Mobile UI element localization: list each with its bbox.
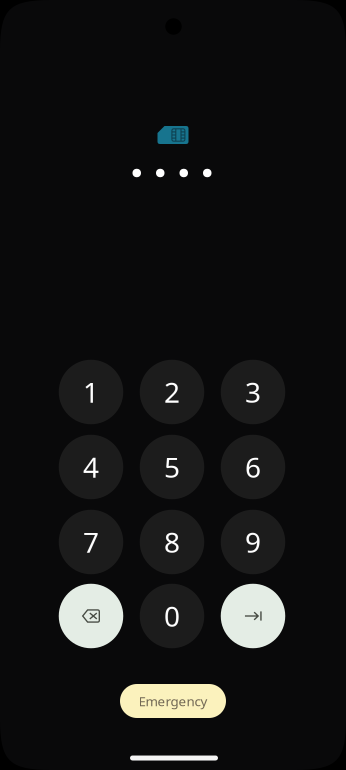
staticText: 0 <box>164 597 180 635</box>
staticText: 3 <box>245 373 261 411</box>
staticText: 9 <box>245 523 261 561</box>
staticText: 1 <box>83 373 99 411</box>
button[interactable]: 6 <box>221 435 285 499</box>
button[interactable]: 8 <box>140 510 204 574</box>
button[interactable]: 9 <box>221 510 285 574</box>
button[interactable]: 2 <box>140 360 204 424</box>
button[interactable]: Emergency <box>120 684 226 718</box>
button[interactable]: 1 <box>59 360 123 424</box>
staticText: 8 <box>164 523 180 561</box>
staticText: 6 <box>245 448 261 486</box>
button[interactable]: 7 <box>59 510 123 574</box>
button[interactable]: Enter <box>221 584 285 648</box>
button[interactable]: Delete <box>59 584 123 648</box>
button[interactable]: 5 <box>140 435 204 499</box>
staticText: 4 <box>83 448 99 486</box>
staticText: Emergency <box>138 692 207 710</box>
button[interactable]: 3 <box>221 360 285 424</box>
staticText: 2 <box>164 373 180 411</box>
staticText: 7 <box>83 523 99 561</box>
staticText: 5 <box>164 448 180 486</box>
button[interactable]: 4 <box>59 435 123 499</box>
button[interactable]: 0 <box>140 584 204 648</box>
